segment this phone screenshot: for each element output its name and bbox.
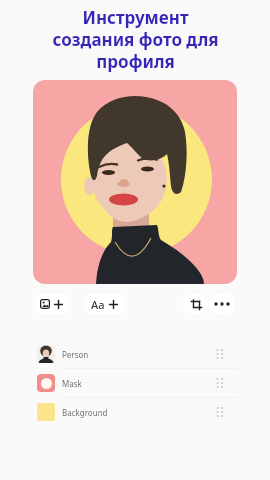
staticText: Person <box>62 349 89 360</box>
staticText: Aa <box>91 297 105 312</box>
staticText: Инструмент создания фото для профиля <box>52 6 219 73</box>
button[interactable]: Background <box>37 398 270 426</box>
staticText: Background <box>62 407 108 418</box>
button[interactable]: Aa <box>83 294 126 314</box>
button[interactable]: Person <box>37 340 270 368</box>
button[interactable] <box>33 294 70 314</box>
button[interactable] <box>33 80 237 284</box>
button[interactable]: Mask <box>37 369 270 397</box>
staticText: Mask <box>62 378 82 389</box>
button[interactable] <box>183 294 209 314</box>
button[interactable] <box>209 294 235 314</box>
